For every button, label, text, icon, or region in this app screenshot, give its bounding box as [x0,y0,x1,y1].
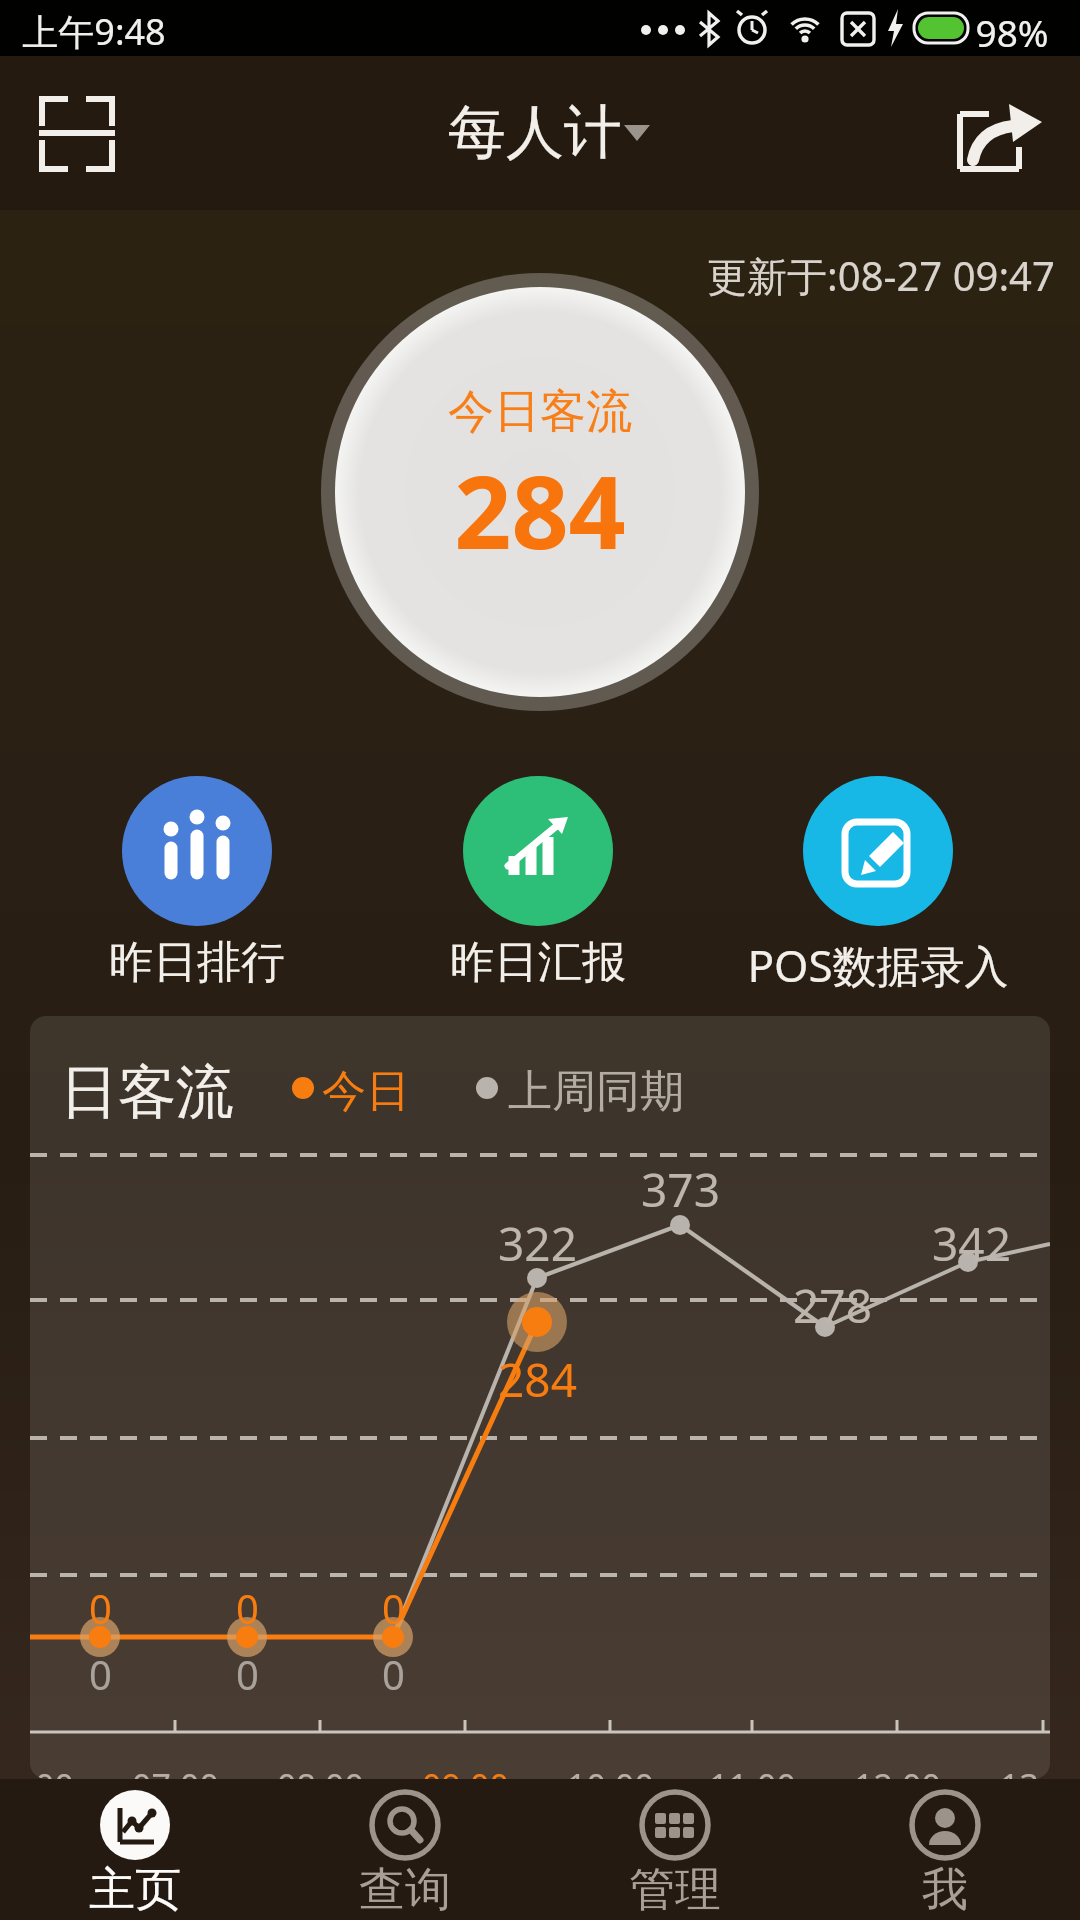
staticText: 昨日汇报 [450,935,626,990]
staticText: 0 [382,1581,405,1635]
staticText: POS数据录入 [747,935,1009,995]
staticText: 0 [89,1581,112,1635]
button[interactable] [39,96,115,172]
button[interactable]: POS数据录入 [718,770,1038,990]
staticText: 06:00 [30,1763,74,1779]
staticText: 08:00 [277,1763,364,1779]
staticText: 322 [498,1212,577,1275]
staticText: 更新于:08-27 09:47 [707,248,1055,303]
staticText: 今日 [322,1064,410,1119]
staticText: 每人计 [448,96,622,169]
button[interactable]: 管理 [540,1779,810,1920]
staticText: 上周同期 [508,1064,684,1119]
staticText: 我 [922,1861,968,1919]
staticText: 98% [975,7,1049,57]
staticText: 342 [932,1212,1011,1275]
staticText: 主页 [89,1861,181,1919]
button[interactable] [957,102,1045,172]
staticText: 昨日排行 [109,935,285,990]
staticText: 日客流 [60,1056,234,1129]
button[interactable]: 每人计 [448,96,652,169]
staticText: 13:00 [1000,1763,1050,1779]
button[interactable]: 查询 [270,1779,540,1920]
staticText: 10:00 [567,1763,654,1779]
staticText: 284 [498,1348,577,1411]
staticText: 373 [641,1158,720,1221]
staticText: 0 [89,1647,112,1701]
button[interactable]: 主页 [0,1779,270,1920]
button[interactable]: 昨日排行 [102,770,292,990]
staticText: 今日客流 [448,383,632,441]
staticText: 0 [236,1647,259,1701]
staticText: 查询 [359,1861,451,1919]
staticText: 07:00 [132,1763,219,1779]
staticText: 管理 [629,1861,721,1919]
staticText: 上午9:48 [22,7,166,56]
staticText: 12:00 [854,1763,941,1779]
staticText: 09:00 [422,1763,509,1779]
staticText: 278 [793,1274,872,1337]
button[interactable]: 昨日汇报 [443,770,633,990]
staticText: 284 [454,442,626,578]
staticText: 0 [236,1581,259,1635]
staticText: 0 [382,1647,405,1701]
staticText: 11:00 [709,1763,796,1779]
button[interactable]: 我 [810,1779,1080,1920]
